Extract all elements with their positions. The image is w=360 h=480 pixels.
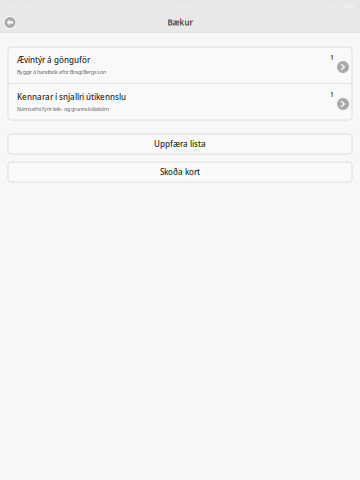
button[interactable]: Ævintýr á gönguför [8,47,352,83]
button[interactable]: Kennarar í snjallri útikennslu [8,84,352,120]
staticText: Bækur [167,17,192,28]
staticText: Kennarar í snjallri útikennslu [17,92,126,102]
staticText: 1 [330,53,334,62]
staticText: Byggir á handbók eftir Bragi Bergsson [17,68,106,75]
staticText: Uppfæra lista [154,139,206,149]
button[interactable]: Uppfæra lista [8,134,352,154]
button[interactable]: Back [0,13,20,32]
staticText: 1 [330,90,334,99]
staticText: Námsefni fyrir leik- og grunnskólabörn [17,105,109,112]
staticText: Ævintýr á gönguför [17,55,90,65]
button[interactable]: Skoða kort [8,162,352,182]
staticText: Skoða kort [160,167,200,177]
